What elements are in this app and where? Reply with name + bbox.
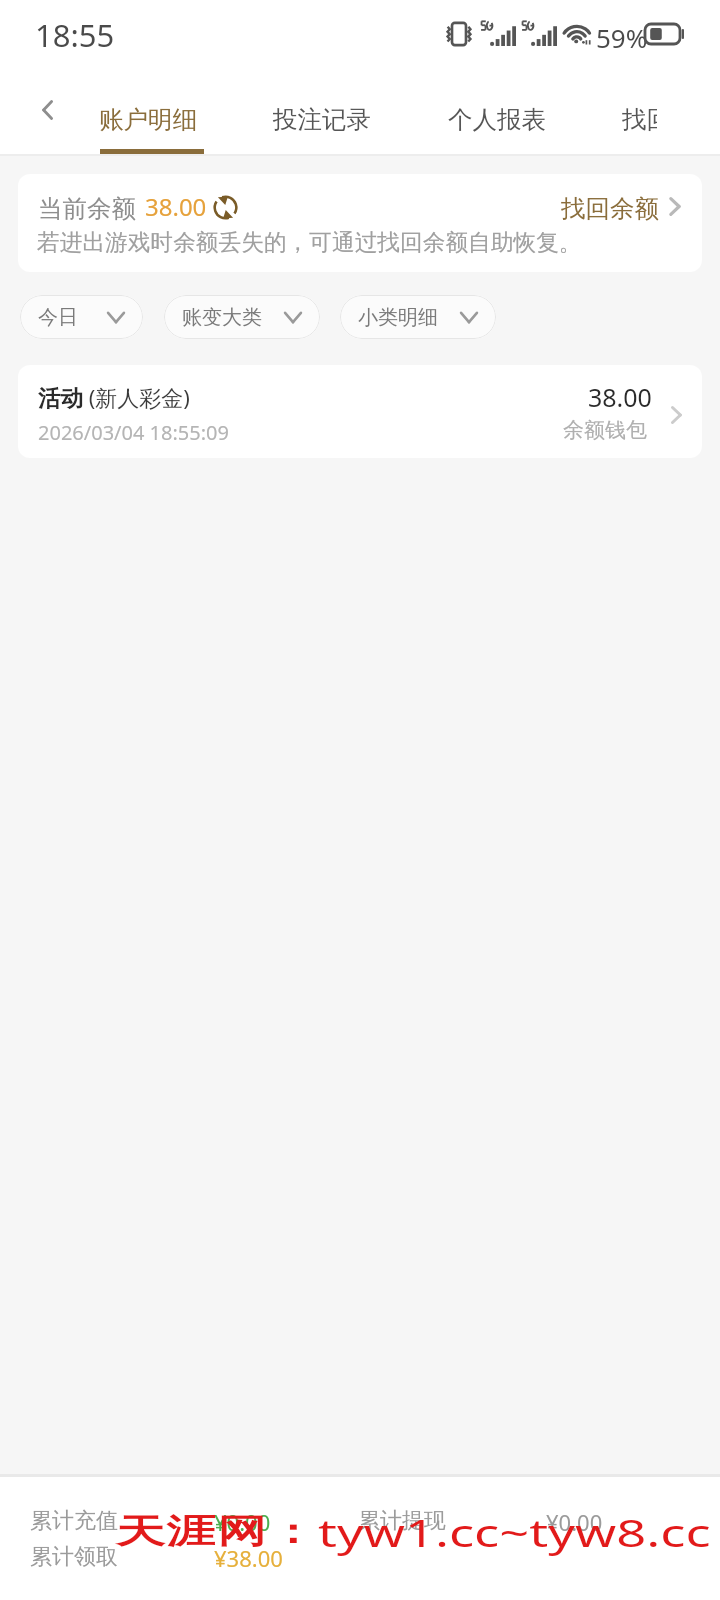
staticText: 59% — [596, 20, 648, 55]
staticText: 2026/03/04 18:55:09 — [38, 419, 229, 446]
button[interactable]: Back — [25, 87, 71, 133]
staticText: 若进出游戏时余额丢失的，可通过找回余额自助恢复。 — [37, 228, 582, 257]
button[interactable]: 今日 — [20, 295, 143, 339]
staticText: 活动 — [38, 384, 83, 412]
staticText: 余额钱包 — [563, 417, 647, 443]
staticText: 小类明细 — [358, 305, 438, 330]
button[interactable]: 账变大类 — [164, 295, 320, 339]
button[interactable]: 投注记录 — [268, 72, 376, 154]
button[interactable]: 当前余额 — [18, 174, 702, 272]
staticText: tyw1.cc~tyw8.cc — [318, 1506, 711, 1558]
button[interactable]: 个人报表 — [443, 72, 551, 154]
staticText: 累计领取 — [30, 1543, 118, 1571]
button[interactable]: 活动 — [18, 365, 702, 458]
staticText: 找回彩金 — [622, 104, 657, 135]
button[interactable]: 账户明细 — [94, 72, 202, 154]
staticText: 18:55 — [35, 14, 115, 56]
button[interactable]: 小类明细 — [340, 295, 496, 339]
staticText: 累计充值 — [30, 1507, 118, 1535]
staticText: 38.00 — [145, 190, 207, 223]
staticText: 账户明细 — [99, 104, 197, 135]
staticText: 今日 — [38, 305, 78, 330]
staticText: 当前余额 — [38, 193, 136, 224]
staticText: 天涯网： — [115, 1510, 318, 1553]
staticText: 累计提现 — [358, 1507, 446, 1535]
staticText: 个人报表 — [448, 104, 546, 135]
button[interactable]: 找回彩金 — [617, 72, 657, 154]
staticText: 找回余额 — [561, 193, 659, 224]
staticText: 38.00 — [588, 380, 652, 414]
staticText: 账变大类 — [182, 305, 262, 330]
staticText: ¥0.00 — [214, 1507, 271, 1537]
staticText: (新人彩金) — [83, 382, 190, 412]
staticText: ¥0.00 — [546, 1507, 603, 1537]
staticText: 投注记录 — [273, 104, 371, 135]
staticText: ¥38.00 — [214, 1543, 283, 1573]
